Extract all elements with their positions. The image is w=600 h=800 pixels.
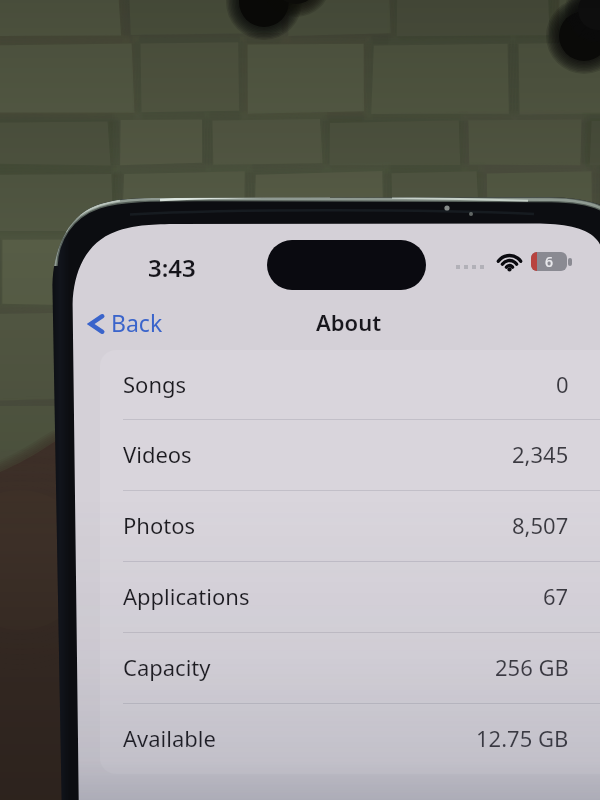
staticText: Applications <box>123 581 250 611</box>
button[interactable]: Videos <box>100 420 600 490</box>
button[interactable]: Songs <box>100 350 600 419</box>
staticText: Available <box>123 723 216 753</box>
staticText: 256 GB <box>495 652 569 682</box>
button[interactable]: Back <box>83 301 169 346</box>
staticText: 2,345 <box>512 439 569 469</box>
button[interactable]: Applications <box>100 562 600 632</box>
button[interactable]: Available <box>100 704 600 774</box>
staticText: 67 <box>543 581 569 611</box>
button[interactable]: Photos <box>100 491 600 561</box>
staticText: About <box>316 307 382 337</box>
staticText: Back <box>111 307 163 338</box>
other: Wi-Fi <box>497 251 522 270</box>
staticText: 0 <box>556 369 569 399</box>
staticText: 12.75 GB <box>476 723 569 753</box>
staticText: Songs <box>123 369 187 399</box>
staticText: Photos <box>123 510 196 540</box>
staticText: Capacity <box>123 652 211 682</box>
staticText: 8,507 <box>512 510 569 540</box>
staticText: 3:43 <box>148 251 196 284</box>
staticText: 6 <box>545 252 554 271</box>
button[interactable]: Capacity <box>100 633 600 703</box>
staticText: Videos <box>123 439 192 469</box>
